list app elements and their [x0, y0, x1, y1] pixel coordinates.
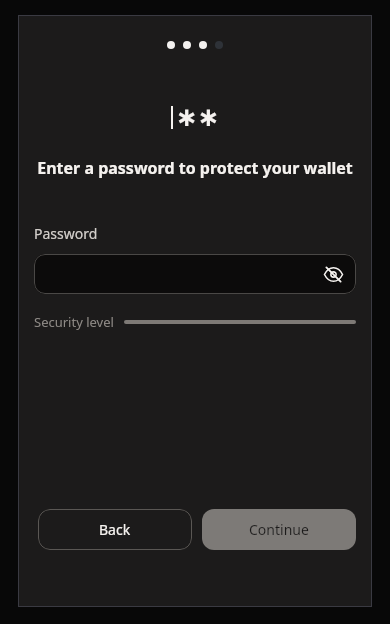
staticText: ∗∗ [176, 102, 220, 132]
staticText: Password [34, 224, 98, 243]
staticText: Continue [249, 520, 309, 539]
staticText: Back [99, 520, 131, 539]
staticText: Enter a password to protect your wallet [26, 157, 364, 179]
staticText: Security level [34, 313, 114, 331]
button[interactable]: Show password [34, 254, 356, 294]
button[interactable]: Continue [202, 509, 356, 550]
button[interactable]: Show password [319, 260, 347, 288]
button[interactable]: Back [38, 509, 192, 550]
